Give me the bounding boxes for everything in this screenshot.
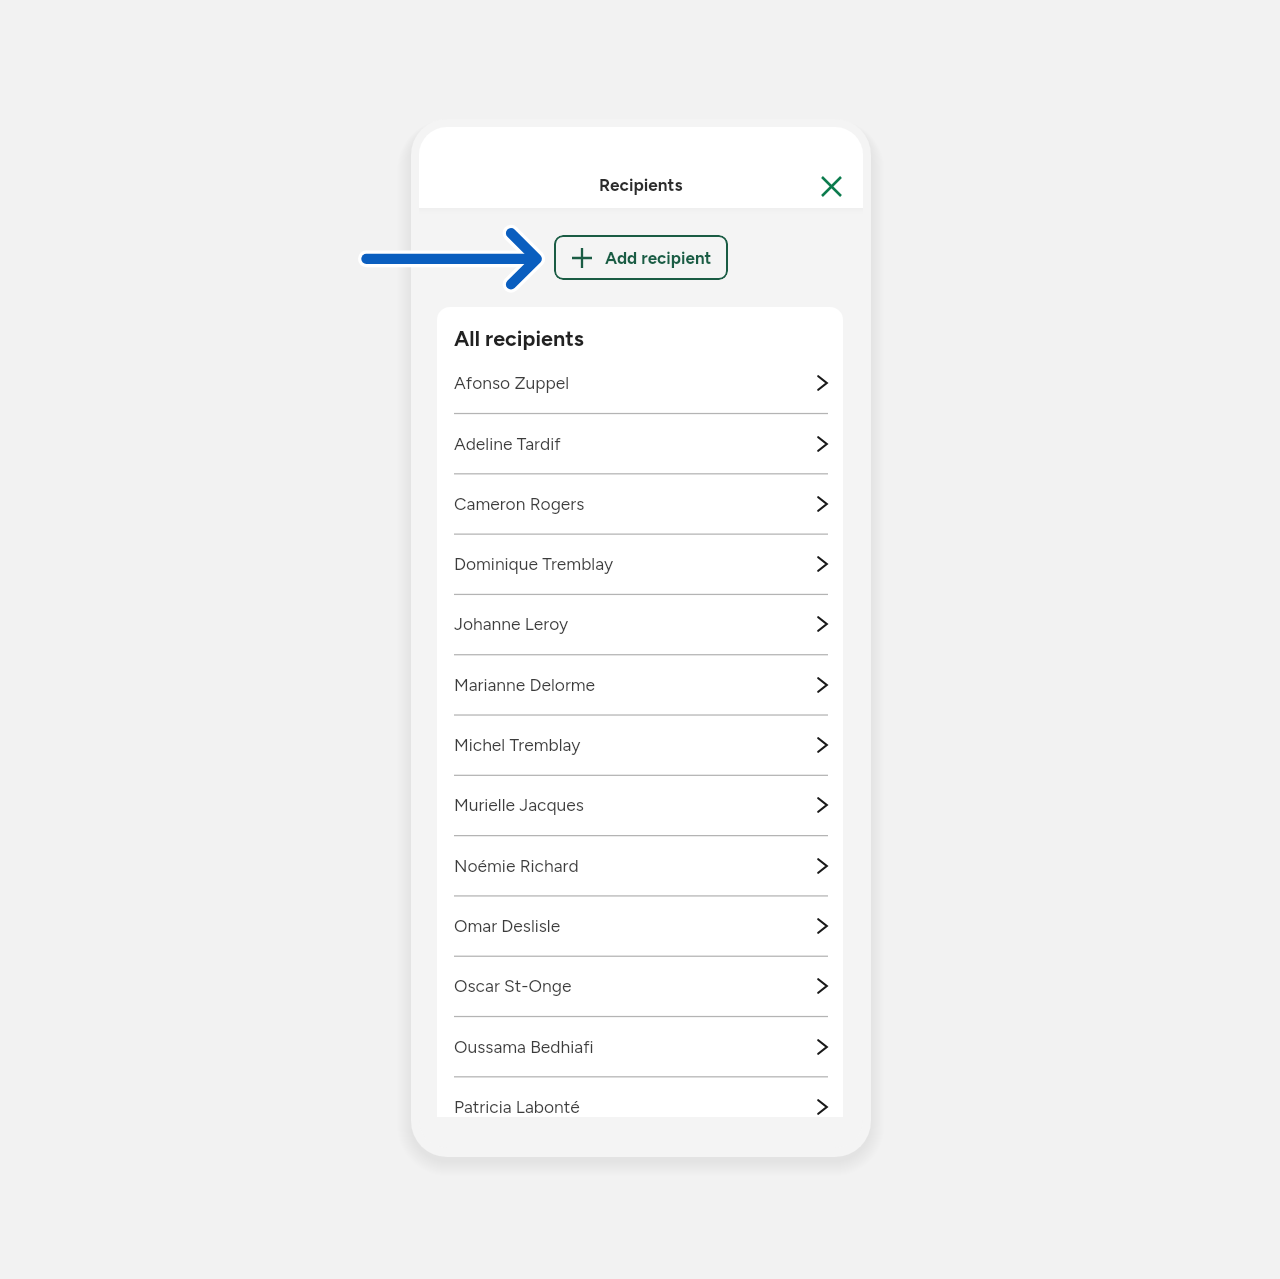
staticText: Add recipient [605,248,712,268]
staticText: Oussama Bedhiafi [454,1036,594,1057]
button[interactable]: Patricia Labonté [437,1077,843,1117]
button[interactable]: Add recipient [554,235,728,280]
staticText: Cameron Rogers [454,493,585,514]
staticText: Noémie Richard [454,855,579,876]
button[interactable]: Omar Deslisle [437,896,843,956]
button[interactable]: Close [813,168,849,204]
staticText: All recipients [454,326,584,352]
staticText: Dominique Tremblay [454,553,614,574]
button[interactable]: Noémie Richard [437,836,843,896]
staticText: Oscar St-Onge [454,975,572,996]
button[interactable]: Cameron Rogers [437,474,843,534]
staticText: Omar Deslisle [454,915,561,936]
staticText: Murielle Jacques [454,794,584,815]
button[interactable]: Marianne Delorme [437,655,843,715]
staticText: Johanne Leroy [454,613,569,634]
staticText: Recipients [599,175,683,196]
button[interactable]: Dominique Tremblay [437,534,843,594]
button[interactable]: Johanne Leroy [437,594,843,654]
button[interactable]: Oscar St-Onge [437,956,843,1016]
button[interactable]: Murielle Jacques [437,775,843,835]
staticText: Marianne Delorme [454,674,596,695]
staticText: Michel Tremblay [454,734,581,755]
button[interactable]: Oussama Bedhiafi [437,1017,843,1077]
button[interactable]: Afonso Zuppel [437,353,843,413]
staticText: Patricia Labonté [454,1096,580,1117]
button[interactable]: Adeline Tardif [437,414,843,474]
staticText: Adeline Tardif [454,433,561,454]
staticText: Afonso Zuppel [454,372,570,393]
button[interactable]: Michel Tremblay [437,715,843,775]
